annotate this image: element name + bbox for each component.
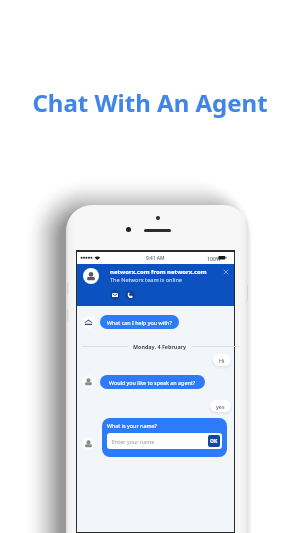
staticText: What can I help you with? (107, 319, 172, 326)
button[interactable]: OK (208, 435, 220, 447)
button[interactable]: Close (222, 268, 230, 276)
button[interactable]: Hi (213, 354, 231, 366)
staticText: yes (216, 403, 225, 410)
staticText: Would you like to speak an agent? (109, 379, 196, 386)
button[interactable]: Would you like to speak an agent? (100, 375, 205, 389)
button[interactable]: Email (110, 290, 120, 300)
staticText: 9:41 AM (146, 255, 165, 262)
staticText: Enter your name (112, 438, 206, 445)
staticText: The Networx team is online (110, 276, 183, 284)
staticText: Monday, 4 February (133, 343, 187, 350)
button[interactable]: yes (210, 400, 231, 412)
staticText: What is your name? (107, 422, 157, 429)
button[interactable]: Call (125, 290, 135, 300)
staticText: Hi (219, 357, 225, 364)
button[interactable]: What can I help you with? (100, 315, 179, 329)
staticText: networx.com from networx.com (110, 268, 207, 276)
staticText: 100% (207, 255, 221, 262)
staticText: Chat With An Agent (0, 86, 300, 119)
staticText: OK (210, 438, 218, 445)
